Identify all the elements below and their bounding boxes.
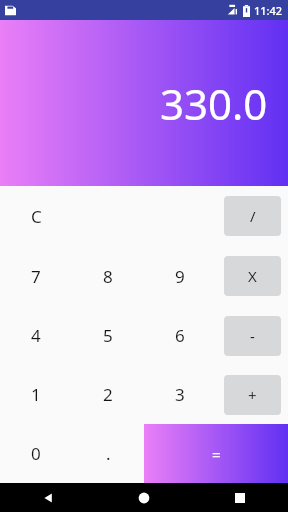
- staticText: 0: [31, 442, 41, 465]
- button[interactable]: -: [224, 316, 281, 356]
- button[interactable]: C: [0, 186, 72, 246]
- staticText: 8: [103, 265, 113, 288]
- staticText: 6: [175, 324, 185, 347]
- button[interactable]: 4: [0, 306, 72, 365]
- button[interactable]: 2: [72, 365, 144, 424]
- staticText: 9: [175, 265, 185, 288]
- staticText: 11:42: [254, 3, 283, 18]
- button[interactable]: 3: [144, 365, 216, 424]
- button[interactable]: .: [72, 424, 144, 483]
- staticText: 330.0: [160, 75, 268, 132]
- staticText: 7: [31, 265, 41, 288]
- button[interactable]: 1: [0, 365, 72, 424]
- staticText: .: [106, 442, 111, 465]
- staticText: /: [250, 206, 256, 226]
- button[interactable]: Recent apps: [192, 483, 288, 512]
- button[interactable]: 7: [0, 246, 72, 306]
- staticText: 1: [31, 383, 41, 406]
- staticText: X: [248, 266, 257, 286]
- staticText: 2: [103, 383, 113, 406]
- staticText: 3: [175, 383, 185, 406]
- staticText: -: [250, 326, 255, 346]
- staticText: 4: [31, 324, 41, 347]
- button[interactable]: 6: [144, 306, 216, 365]
- staticText: =: [212, 444, 221, 464]
- button[interactable]: 8: [72, 246, 144, 306]
- button[interactable]: X: [224, 256, 281, 296]
- button[interactable]: +: [224, 375, 281, 415]
- staticText: +: [248, 385, 257, 405]
- button[interactable]: =: [144, 424, 288, 483]
- button[interactable]: Home: [96, 483, 192, 512]
- button[interactable]: Back: [0, 483, 96, 512]
- button[interactable]: 5: [72, 306, 144, 365]
- button[interactable]: /: [224, 196, 281, 236]
- staticText: C: [31, 205, 42, 228]
- button[interactable]: 0: [0, 424, 72, 483]
- staticText: 5: [103, 324, 113, 347]
- button[interactable]: 9: [144, 246, 216, 306]
